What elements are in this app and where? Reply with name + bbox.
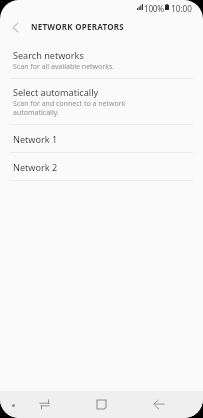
staticText: Scan for and connect to a network automa…	[13, 99, 126, 117]
staticText: Network 1	[13, 133, 58, 145]
button[interactable]: Select automatically	[0, 79, 203, 124]
staticText: Network 2	[13, 161, 58, 173]
button[interactable]: Back	[146, 392, 171, 417]
staticText: Search networks	[13, 49, 84, 61]
staticText: 100%	[144, 3, 164, 14]
staticText: 10:00	[171, 3, 192, 14]
button[interactable]: Network 1	[0, 125, 203, 152]
button[interactable]: Keyboard	[3, 395, 23, 415]
button[interactable]: Recents	[32, 392, 57, 417]
button[interactable]: Network 2	[0, 153, 203, 180]
staticText: Scan for all available networks.	[13, 62, 115, 72]
staticText: NETWORK OPERATORS	[31, 21, 124, 32]
staticText: Select automatically	[13, 86, 99, 98]
button[interactable]: Navigate up	[5, 15, 27, 37]
button[interactable]: Search networks	[0, 42, 203, 78]
button[interactable]: Home	[89, 392, 114, 417]
